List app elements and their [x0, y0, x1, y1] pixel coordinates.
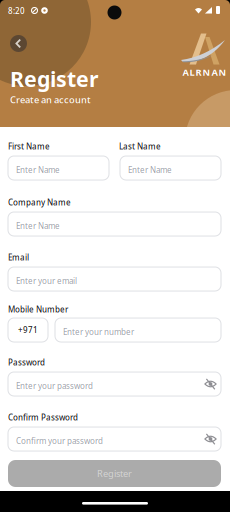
staticText: Email [8, 252, 29, 263]
staticText: First Name [8, 141, 50, 152]
staticText: Enter Name [128, 165, 172, 175]
button[interactable]: Enter Name [8, 156, 109, 180]
staticText: Enter your number [63, 327, 134, 337]
button[interactable]: Enter Name [8, 212, 221, 236]
button[interactable]: Enter your email [8, 267, 221, 291]
staticText: 8:20 [8, 5, 25, 16]
staticText: Confirm your password [16, 436, 103, 446]
staticText: Create an account [10, 93, 91, 106]
button[interactable]: Show password [204, 432, 217, 445]
button[interactable]: Enter Name [120, 156, 221, 180]
staticText: Enter your password [16, 381, 93, 391]
staticText: Register [97, 467, 132, 480]
button[interactable]: Enter your password [8, 372, 221, 396]
staticText: Password [8, 357, 45, 368]
button[interactable]: Country code +971 [8, 318, 48, 342]
button[interactable]: Back [10, 35, 27, 52]
staticText: Last Name [119, 141, 161, 152]
button[interactable]: Register [8, 460, 221, 487]
staticText: Enter Name [16, 165, 60, 175]
staticText: Enter your email [16, 276, 77, 286]
staticText: Company Name [8, 197, 71, 208]
staticText: Confirm Password [8, 412, 78, 423]
staticText: Register [10, 64, 99, 93]
button[interactable]: Show password [204, 377, 217, 390]
staticText: +971 [18, 325, 38, 335]
staticText: ALRNAN [182, 66, 226, 78]
staticText: Mobile Number [8, 304, 68, 315]
staticText: Enter Name [16, 221, 60, 231]
button[interactable]: Enter your number [55, 318, 221, 342]
button[interactable]: Confirm your password [8, 427, 221, 451]
